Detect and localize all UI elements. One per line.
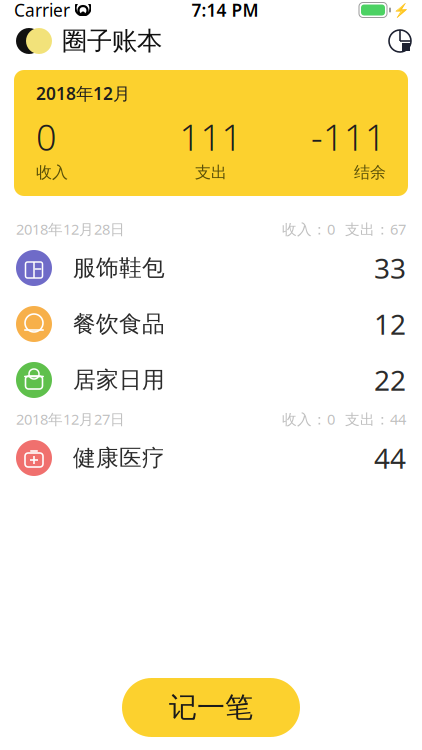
button[interactable]: 服饰鞋包 [0,240,422,296]
staticText: 2018年12月28日 [16,219,125,239]
staticText: 2018年12月 [36,82,130,105]
staticText: 记一笔 [169,690,253,725]
staticText: 收入：0 [282,219,335,239]
staticText: 44 [374,439,406,477]
staticText: 2018年12月27日 [16,409,125,429]
staticText: 0 [36,113,57,161]
staticText: 支出 [195,163,227,182]
staticText: 收入：0 [282,409,335,429]
staticText: -111 [311,113,386,161]
staticText: ⚡ [393,2,410,18]
staticText: 7:14 PM [191,0,258,21]
button[interactable]: 统计图表 [378,20,422,62]
staticText: 居家日用 [73,366,165,394]
button[interactable]: 健康医疗 [0,430,422,486]
staticText: 33 [374,249,406,287]
staticText: 111 [179,113,242,161]
staticText: 健康医疗 [73,444,165,472]
staticText: Carrier [14,0,70,21]
button[interactable]: 记一笔 [122,678,300,737]
staticText: 圈子账本 [62,25,162,56]
staticText: 餐饮食品 [73,310,165,338]
staticText: 支出：44 [345,409,406,429]
button[interactable]: 餐饮食品 [0,296,422,352]
staticText: 12 [374,305,406,343]
staticText: 服饰鞋包 [73,254,165,282]
button[interactable]: 居家日用 [0,352,422,408]
staticText: 支出：67 [345,219,406,239]
staticText: 结余 [354,163,386,182]
staticText: 收入 [36,163,68,182]
staticText: 22 [374,361,406,399]
